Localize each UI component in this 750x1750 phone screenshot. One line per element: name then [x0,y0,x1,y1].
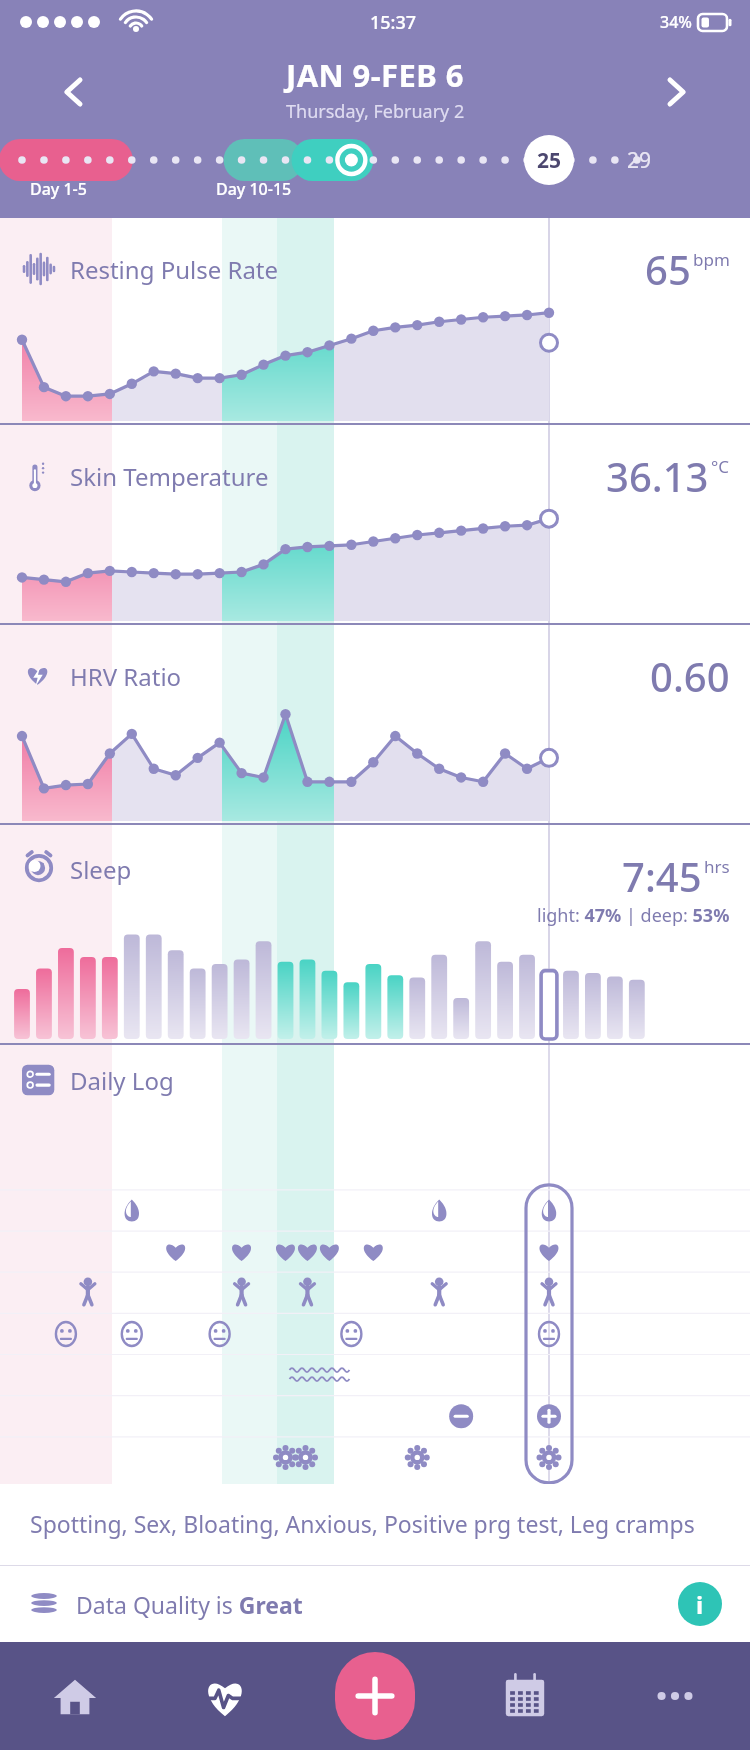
button[interactable]: Home [0,1642,150,1750]
staticText: Resting Pulse Rate [70,253,279,286]
button[interactable]: Data Quality is Great [0,1566,750,1642]
staticText: HRV Ratio [70,660,182,693]
staticText: Day 10-15 [216,178,292,200]
button[interactable]: Resting Pulse Rate [0,218,750,423]
staticText: 0.60 [650,649,730,703]
staticText: Day 1-5 [30,178,87,200]
button[interactable]: Health [150,1642,300,1750]
button[interactable]: Skin Temperature [0,425,750,623]
staticText: 15:37 [370,10,417,35]
staticText: Sleep [70,853,132,886]
button[interactable]: Add entry [335,1652,415,1740]
staticText: °C [711,455,730,478]
staticText: 65 [645,242,691,296]
staticText: bpm [693,248,730,271]
staticText: 25 [537,146,562,175]
staticText: Data Quality is Great [76,1589,303,1620]
button[interactable]: HRV Ratio [0,625,750,823]
staticText: JAN 9-FEB 6 [286,54,464,96]
button[interactable]: Info [678,1582,722,1626]
staticText: Thursday, February 2 [286,99,465,124]
staticText: Spotting, Sex, Bloating, Anxious, Positi… [30,1508,695,1539]
staticText: 7:45 [622,849,702,903]
button[interactable]: Calendar [450,1642,600,1750]
staticText: i [696,1588,704,1621]
staticText: Daily Log [70,1064,174,1097]
staticText: 36.13 [606,449,709,503]
button[interactable]: More [600,1642,750,1750]
staticText: 34% [660,11,692,33]
staticText: Skin Temperature [70,460,269,493]
staticText: 29 [627,146,652,175]
button[interactable]: Cycle day timeline [0,133,750,189]
staticText: hrs [704,855,730,878]
button[interactable]: Sleep [0,825,750,1043]
button[interactable]: Previous period [46,64,102,120]
button[interactable]: Daily Log [0,1045,750,1484]
button[interactable]: Next period [648,64,704,120]
staticText: light: 47% | deep: 53% [537,903,730,928]
